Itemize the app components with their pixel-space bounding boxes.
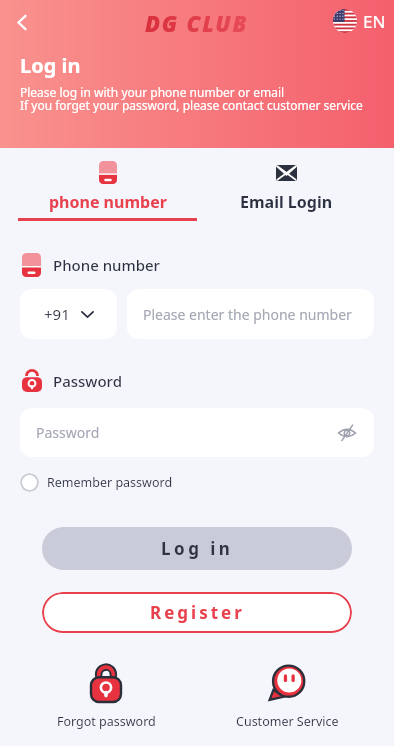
staticText: Password bbox=[53, 371, 122, 391]
button[interactable]: Password bbox=[20, 408, 374, 457]
staticText: Email Login bbox=[240, 191, 333, 213]
staticText: DG CLUB bbox=[145, 8, 249, 38]
staticText: Phone number bbox=[53, 255, 160, 275]
staticText: Customer Service bbox=[236, 713, 339, 730]
staticText: Please enter the phone number bbox=[143, 305, 352, 324]
staticText: Please log in with your phone number or … bbox=[20, 84, 363, 114]
staticText: Log in bbox=[20, 52, 81, 79]
button[interactable]: Remember password bbox=[20, 473, 173, 492]
button[interactable]: EN bbox=[333, 9, 386, 33]
button[interactable]: Register bbox=[42, 592, 352, 633]
button[interactable]: +91 bbox=[20, 289, 117, 339]
button[interactable]: Log in bbox=[42, 527, 352, 570]
staticText: Log in bbox=[161, 537, 234, 560]
staticText: +91 bbox=[44, 304, 70, 324]
button[interactable]: Forgot password bbox=[41, 664, 171, 730]
button[interactable]: Email Login bbox=[197, 148, 376, 213]
staticText: Password bbox=[36, 423, 100, 442]
button[interactable] bbox=[6, 6, 38, 38]
button[interactable]: phone number bbox=[18, 148, 197, 221]
staticText: Remember password bbox=[47, 474, 173, 491]
staticText: phone number bbox=[49, 191, 167, 213]
button[interactable]: Customer Service bbox=[222, 664, 352, 730]
staticText: EN bbox=[363, 10, 386, 33]
staticText: Forgot password bbox=[57, 713, 156, 730]
button[interactable]: Please enter the phone number bbox=[127, 289, 374, 339]
staticText: Register bbox=[150, 601, 245, 624]
